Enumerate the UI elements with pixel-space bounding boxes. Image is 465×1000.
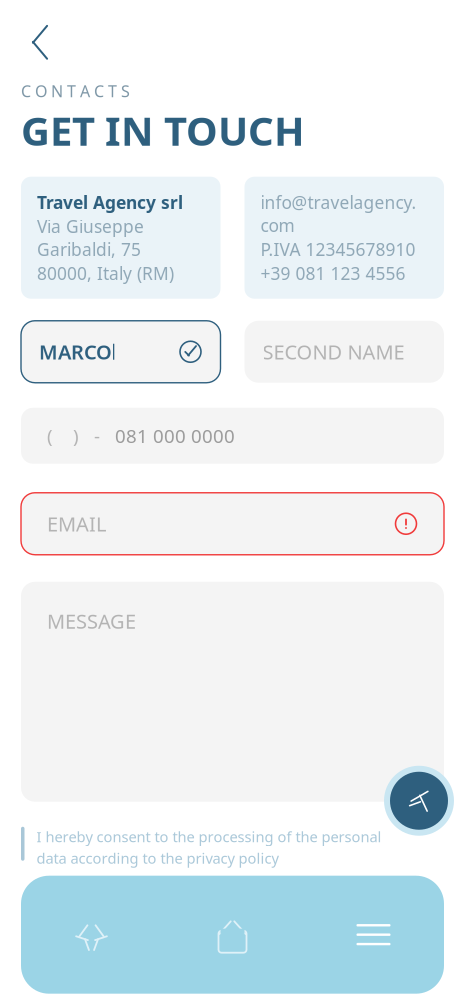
staticText: P.IVA 12345678910	[260, 238, 415, 261]
button[interactable]: Favourites	[21, 876, 162, 994]
staticText: GET IN TOUCH	[21, 104, 305, 157]
button[interactable]: EMAIL	[21, 493, 444, 555]
staticText: 081 000 0000	[100, 423, 235, 448]
button[interactable]: Back	[18, 18, 62, 66]
staticText: info@travelagency.com	[260, 191, 416, 237]
staticText: MARCO	[39, 338, 112, 365]
staticText: ( ) -	[47, 423, 100, 448]
staticText: C O N T A C T S	[21, 80, 130, 101]
button[interactable]: SECOND NAME	[244, 321, 444, 383]
staticText: +39 081 123 4556	[260, 262, 405, 285]
staticText: MESSAGE	[47, 608, 136, 634]
button[interactable]: Home	[162, 876, 303, 994]
staticText: Travel Agency srl	[37, 191, 183, 214]
staticText: I hereby consent to the processing of th…	[36, 827, 381, 846]
button[interactable]: MARCO	[21, 321, 220, 383]
staticText: Via Giuseppe Garibaldi, 75	[37, 215, 144, 261]
button[interactable]: Menu	[303, 876, 444, 994]
staticText: data according to the privacy policy	[36, 848, 278, 868]
button[interactable]: ( ) -	[21, 408, 444, 464]
staticText: SECOND NAME	[262, 338, 404, 365]
button[interactable]: MESSAGE	[21, 582, 444, 802]
staticText: 80000, Italy (RM)	[37, 262, 174, 285]
button[interactable]: Send message	[382, 764, 456, 838]
staticText: EMAIL	[47, 510, 106, 537]
